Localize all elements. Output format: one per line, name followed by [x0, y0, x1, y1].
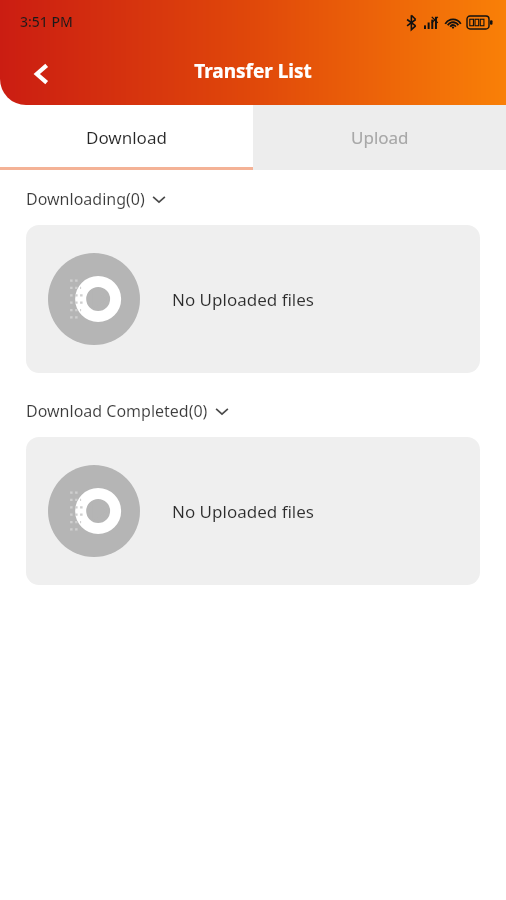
button[interactable]: Download Completed(0) — [0, 396, 506, 426]
button[interactable]: Back — [18, 50, 66, 98]
staticText: Upload — [351, 126, 409, 149]
button[interactable]: Downloading(0) — [0, 184, 506, 214]
button[interactable]: No Uploaded files — [26, 225, 480, 373]
button[interactable]: No Uploaded files — [26, 437, 480, 585]
staticText: No Uploaded files — [172, 500, 314, 523]
staticText: Download — [86, 126, 167, 149]
button[interactable]: Upload — [253, 105, 506, 170]
button[interactable]: Download — [0, 105, 253, 170]
staticText: Downloading(0) — [26, 188, 145, 210]
staticText: Transfer List — [0, 58, 506, 84]
staticText: Download Completed(0) — [26, 400, 208, 422]
staticText: No Uploaded files — [172, 288, 314, 311]
staticText: 3:51 PM — [20, 12, 73, 31]
